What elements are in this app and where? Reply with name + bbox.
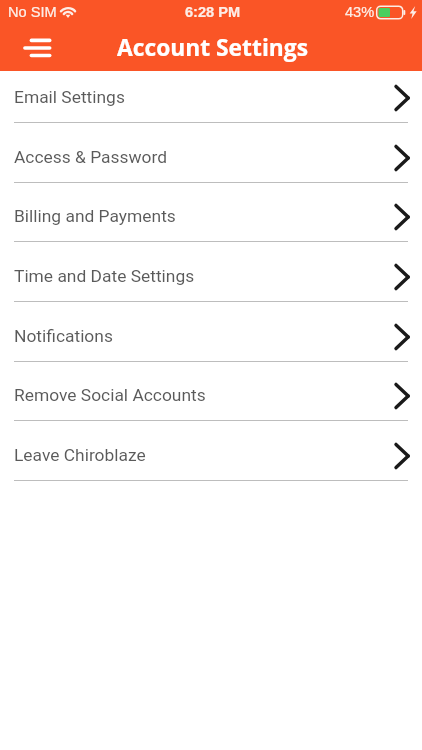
button[interactable]: Notifications — [0, 302, 422, 362]
staticText: Access & Password — [14, 147, 167, 167]
button[interactable]: Menu — [14, 26, 58, 70]
button[interactable]: Leave Chiroblaze — [0, 421, 422, 481]
button[interactable]: Time and Date Settings — [0, 242, 422, 302]
staticText: Remove Social Accounts — [14, 385, 206, 405]
button[interactable]: Billing and Payments — [0, 182, 422, 242]
staticText: Time and Date Settings — [14, 266, 195, 286]
staticText: Billing and Payments — [14, 206, 176, 226]
button[interactable]: Remove Social Accounts — [0, 361, 422, 421]
staticText: 6:28 PM — [185, 4, 241, 20]
staticText: Leave Chiroblaze — [14, 445, 146, 465]
button[interactable]: Email Settings — [0, 63, 422, 123]
staticText: 43% — [345, 4, 375, 20]
button[interactable]: Access & Password — [0, 123, 422, 183]
staticText: Email Settings — [14, 87, 125, 107]
staticText: No SIM — [8, 4, 57, 20]
staticText: Notifications — [14, 326, 113, 346]
staticText: Account Settings — [117, 32, 309, 63]
